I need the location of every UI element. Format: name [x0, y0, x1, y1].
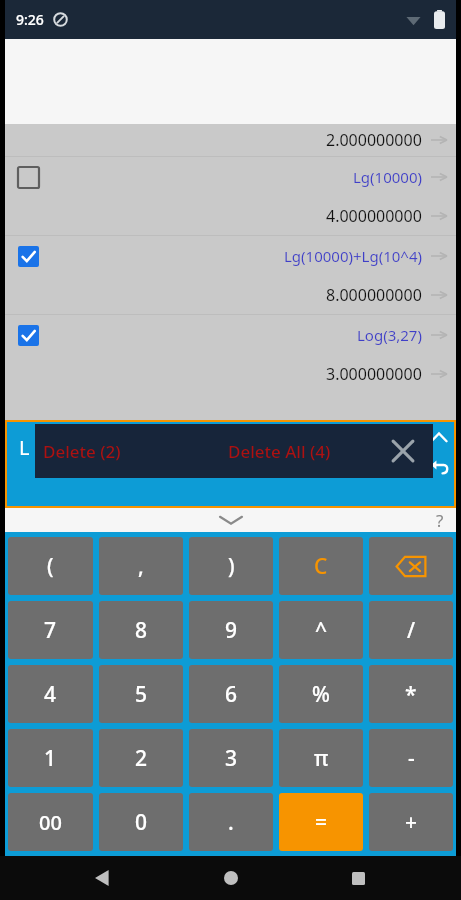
button[interactable]: * [369, 665, 453, 723]
staticText: 9 [225, 616, 238, 645]
button[interactable]: π [279, 729, 363, 787]
staticText: 2 [135, 744, 148, 773]
staticText: 4 [44, 680, 57, 709]
staticText: / [407, 616, 416, 645]
staticText: 8 [135, 616, 148, 645]
button[interactable]: Recents [334, 856, 382, 900]
button[interactable]: Select entry [18, 246, 39, 267]
button[interactable]: Home [207, 856, 255, 900]
button[interactable]: C [279, 537, 363, 595]
staticText: 00 [39, 809, 62, 836]
staticText: ) [228, 552, 235, 581]
button[interactable]: = [279, 793, 363, 851]
staticText: Log(3,27) [357, 325, 422, 345]
staticText: ? [436, 509, 444, 532]
button[interactable]: Select entry [18, 325, 39, 346]
staticText: 7 [44, 616, 57, 645]
staticText: L [19, 434, 30, 461]
button[interactable]: 5 [99, 665, 183, 723]
staticText: 1 [44, 744, 57, 773]
staticText: . [228, 808, 234, 837]
staticText: Delete (2) [43, 440, 121, 463]
button[interactable]: % [279, 665, 363, 723]
button[interactable]: Undo [425, 452, 453, 480]
button[interactable]: 00 [8, 793, 93, 851]
staticText: + [405, 808, 418, 837]
button[interactable]: Delete All (4) [185, 424, 373, 478]
button[interactable]: 8 [99, 601, 183, 659]
staticText: 5 [135, 680, 148, 709]
button[interactable]: Help [424, 508, 456, 532]
staticText: Delete All (4) [228, 440, 331, 463]
button[interactable]: ) [189, 537, 273, 595]
staticText: 3.000000000 [326, 363, 422, 385]
button[interactable]: 3 [189, 729, 273, 787]
staticText: - [408, 744, 415, 773]
button[interactable]: ( [8, 537, 93, 595]
button[interactable]: 4.000000000 [5, 197, 456, 235]
staticText: 2.000000000 [326, 129, 422, 151]
staticText: 4.000000000 [326, 205, 422, 227]
button[interactable]: 7 [8, 601, 93, 659]
staticText: C [314, 552, 328, 581]
staticText: Lg(10000) [353, 167, 422, 187]
button[interactable]: , [99, 537, 183, 595]
button[interactable]: Select entry [5, 236, 456, 276]
button[interactable]: 2.000000000 [5, 124, 456, 156]
button[interactable]: - [369, 729, 453, 787]
button[interactable]: 4 [8, 665, 93, 723]
button[interactable]: Expand [425, 424, 453, 452]
button[interactable]: 8.000000000 [5, 276, 456, 314]
staticText: ^ [315, 616, 328, 645]
button[interactable]: ^ [279, 601, 363, 659]
button[interactable]: 1 [8, 729, 93, 787]
staticText: = [315, 808, 328, 837]
button[interactable]: Back [79, 856, 127, 900]
staticText: ( [47, 552, 54, 581]
button[interactable]: 9 [189, 601, 273, 659]
button[interactable]: Close [373, 424, 433, 478]
button[interactable]: + [369, 793, 453, 851]
staticText: , [138, 552, 144, 581]
button[interactable]: Delete (2) [35, 424, 185, 478]
button[interactable]: 2 [99, 729, 183, 787]
button[interactable]: 3.000000000 [5, 355, 456, 393]
staticText: 6 [225, 680, 238, 709]
staticText: 0 [135, 808, 148, 837]
staticText: 3 [225, 744, 238, 773]
button[interactable]: / [369, 601, 453, 659]
button[interactable]: Backspace [369, 537, 453, 595]
staticText: % [312, 680, 330, 709]
button[interactable]: Collapse [201, 508, 261, 532]
staticText: 8.000000000 [326, 284, 422, 306]
button[interactable]: 0 [99, 793, 183, 851]
button[interactable]: Select entry [5, 315, 456, 355]
button[interactable]: Select entry [18, 167, 39, 188]
staticText: Lg(10000)+Lg(10^4) [284, 246, 422, 266]
staticText: 9:26 [16, 10, 44, 29]
button[interactable]: . [189, 793, 273, 851]
button[interactable]: Select entry [5, 157, 456, 197]
staticText: π [314, 744, 329, 773]
staticText: * [405, 680, 417, 709]
button[interactable]: 6 [189, 665, 273, 723]
